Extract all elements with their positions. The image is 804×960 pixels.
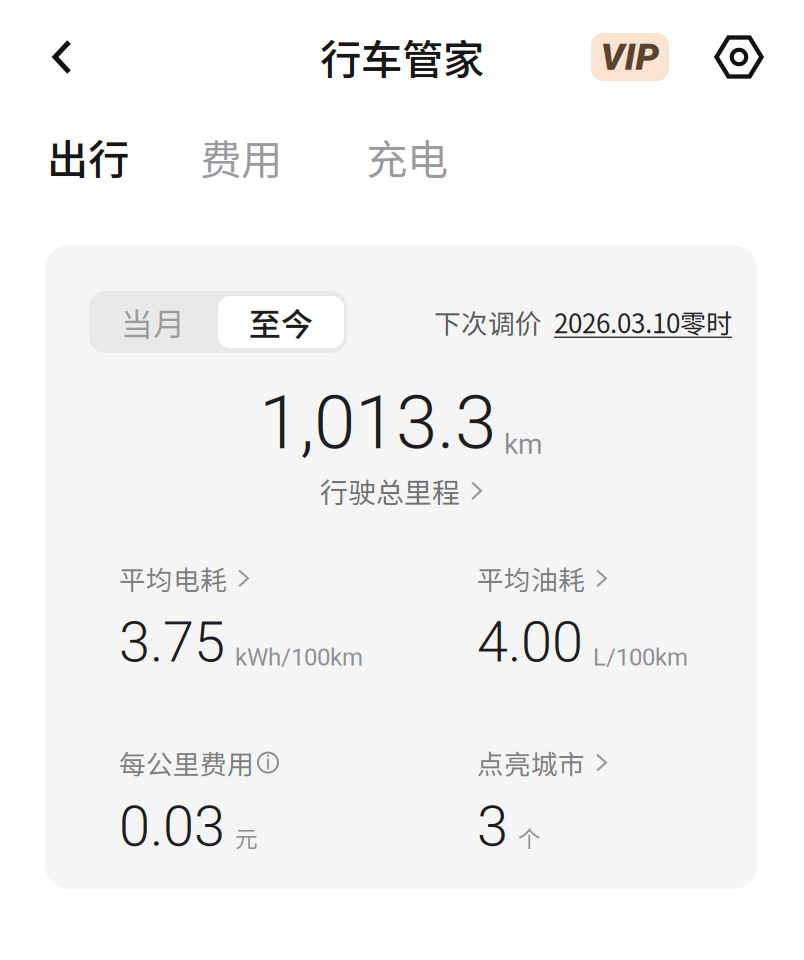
button[interactable]: 充电 [359, 129, 455, 185]
button[interactable]: 每公里费用 [119, 743, 477, 782]
staticText: 充电 [366, 127, 448, 187]
staticText: VIP [600, 35, 659, 79]
staticText: 至今 [249, 299, 313, 345]
staticText: i [265, 751, 270, 774]
staticText: 当月 [121, 299, 185, 345]
staticText: km [504, 428, 543, 460]
button[interactable]: 出行 [40, 129, 136, 185]
staticText: 元 [235, 821, 258, 853]
staticText: 1,013.3 [259, 379, 496, 466]
button[interactable]: 2026.03.10零时 [554, 303, 732, 341]
staticText: 平均电耗 [119, 559, 227, 598]
staticText: kWh/100km [235, 643, 363, 671]
button[interactable]: VIP membership [591, 33, 669, 81]
staticText: 0.03 [119, 794, 225, 859]
staticText: 每公里费用 [119, 743, 254, 782]
staticText: 2026.03.10零时 [554, 303, 732, 341]
button[interactable]: 行驶总里程 [320, 466, 482, 515]
staticText: 出行 [47, 127, 129, 187]
button[interactable]: 平均电耗 [119, 559, 477, 598]
staticText: 费用 [200, 127, 282, 187]
staticText: 3 [477, 794, 508, 859]
staticText: L/100km [593, 643, 688, 671]
staticText: 个 [518, 821, 541, 853]
button[interactable]: 点亮城市 [477, 743, 757, 782]
button[interactable]: Settings [713, 20, 765, 94]
button[interactable]: Back [31, 20, 93, 94]
button[interactable]: 至今 [218, 296, 344, 348]
staticText: 行驶总里程 [320, 470, 460, 511]
button[interactable]: 当月 [88, 291, 218, 353]
staticText: 点亮城市 [477, 743, 585, 782]
button[interactable]: 费用 [193, 129, 289, 185]
staticText: 3.75 [119, 610, 225, 675]
staticText: 4.00 [477, 610, 583, 675]
staticText: 行车管家 [320, 27, 484, 87]
button[interactable]: 平均油耗 [477, 559, 757, 598]
staticText: 平均油耗 [477, 559, 585, 598]
staticText: 下次调价 [434, 303, 542, 341]
